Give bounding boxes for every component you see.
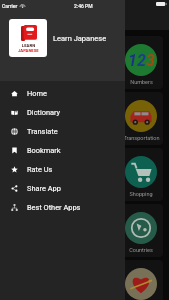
staticText: Transportation	[123, 135, 160, 141]
staticText: 1	[128, 51, 137, 70]
staticText: Translate	[27, 127, 58, 136]
button[interactable]: Transportation	[119, 92, 163, 145]
staticText: 2:46 PM	[74, 3, 93, 9]
staticText: Rate Us	[27, 165, 53, 174]
button[interactable]: Shopping	[119, 148, 163, 201]
staticText: Bookmark	[27, 146, 61, 155]
staticText: Numbers	[130, 79, 153, 85]
button[interactable]: Share App	[0, 179, 125, 198]
button[interactable]: Countries	[119, 204, 163, 257]
staticText: 3	[146, 51, 155, 70]
staticText: 2	[137, 51, 146, 70]
staticText: Learn Japanese	[53, 34, 107, 43]
staticText: Share App	[27, 184, 61, 193]
button[interactable]: Love	[119, 260, 163, 300]
staticText: LEARN	[22, 43, 36, 48]
button[interactable]: Home	[0, 84, 125, 103]
button[interactable]: 1	[119, 36, 163, 89]
staticText: Best Other Apps	[27, 203, 81, 212]
button[interactable]: Translate	[0, 122, 125, 141]
button[interactable]: Bookmark	[0, 141, 125, 160]
staticText: Dictionary	[27, 108, 61, 117]
staticText: Shopping	[129, 191, 153, 197]
staticText: Carrier	[2, 3, 18, 9]
staticText: Countries	[129, 247, 153, 253]
staticText: Home	[27, 89, 47, 98]
button[interactable]: Rate Us	[0, 160, 125, 179]
staticText: JAPANESE	[18, 48, 39, 53]
button[interactable]: Best Other Apps	[0, 198, 125, 217]
button[interactable]: Dictionary	[0, 103, 125, 122]
